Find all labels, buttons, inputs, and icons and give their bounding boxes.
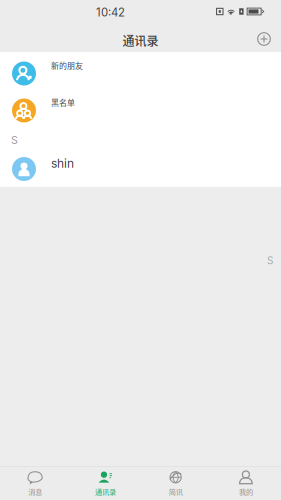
staticText: S — [267, 254, 273, 267]
staticText: shin — [51, 156, 74, 170]
button[interactable]: 我的 — [211, 467, 281, 500]
button[interactable]: Add contact — [253, 28, 275, 50]
staticText: 通讯录 — [122, 32, 158, 49]
staticText: 消息 — [28, 486, 42, 497]
button[interactable]: 黑名单 — [0, 89, 281, 126]
button[interactable]: 简讯 — [140, 467, 211, 500]
staticText: 10:42 — [96, 6, 125, 19]
staticText: S — [11, 133, 18, 146]
staticText: 新的朋友 — [51, 59, 83, 71]
staticText: 黑名单 — [51, 96, 75, 108]
button[interactable]: shin — [0, 145, 281, 187]
staticText: 简讯 — [169, 486, 183, 497]
button[interactable]: 通讯录 — [70, 467, 140, 500]
button[interactable]: 新的朋友 — [0, 52, 281, 89]
staticText: 我的 — [239, 486, 253, 497]
staticText: 通讯录 — [95, 486, 116, 497]
button[interactable]: 消息 — [0, 467, 70, 500]
